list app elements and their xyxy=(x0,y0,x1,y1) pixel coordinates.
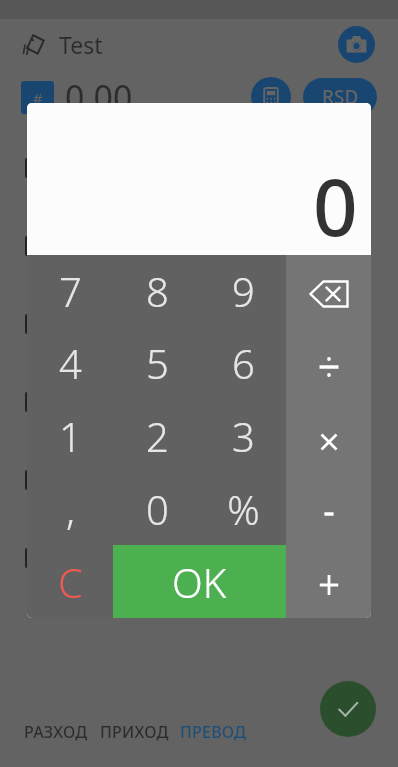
staticText: OK xyxy=(172,555,227,609)
button[interactable]: Divide xyxy=(286,327,371,399)
staticText: Test xyxy=(59,29,103,60)
staticText: RSD xyxy=(322,84,359,110)
staticText: , xyxy=(66,482,75,536)
staticText: 980,00 xyxy=(59,406,106,426)
staticText: ПРЕВОД xyxy=(180,721,247,742)
button[interactable]: Other xyxy=(0,519,398,597)
staticText: 0.00 xyxy=(65,74,133,120)
staticText: 3 xyxy=(232,409,255,463)
staticText: 350,00 xyxy=(59,250,106,270)
button[interactable]: 0 xyxy=(114,472,200,545)
button[interactable]: 8 xyxy=(114,255,200,327)
staticText: 5 xyxy=(146,336,169,390)
button[interactable]: Calculator xyxy=(251,77,291,117)
button[interactable]: , xyxy=(27,472,114,545)
button[interactable]: % xyxy=(200,472,286,545)
button[interactable]: Confirm xyxy=(320,681,376,737)
staticText: Bank xyxy=(59,300,100,323)
staticText: C xyxy=(58,555,83,609)
staticText: 6 xyxy=(232,336,255,390)
staticText: 2 xyxy=(146,409,169,463)
button[interactable]: Camera xyxy=(338,26,375,63)
staticText: 4 xyxy=(59,336,82,390)
staticText: Savings xyxy=(59,378,120,401)
button[interactable]: 7 xyxy=(27,255,114,327)
button[interactable]: RSD xyxy=(303,78,377,116)
button[interactable]: Wallet xyxy=(0,441,398,519)
button[interactable]: 6 xyxy=(200,327,286,399)
button[interactable]: Cash xyxy=(0,129,398,207)
button[interactable]: Bank xyxy=(0,285,398,363)
button[interactable]: 2 xyxy=(114,399,200,472)
button[interactable]: 5 xyxy=(114,327,200,399)
staticText: % xyxy=(227,482,260,536)
button[interactable]: ПРЕВОД xyxy=(176,712,251,751)
staticText: 1 xyxy=(59,409,82,463)
button[interactable]: 9 xyxy=(200,255,286,327)
button[interactable]: OK xyxy=(113,545,286,618)
button[interactable]: Savings xyxy=(0,363,398,441)
button[interactable]: 4 xyxy=(27,327,114,399)
button[interactable]: РАЗХОД xyxy=(20,712,92,751)
button[interactable]: 1 xyxy=(27,399,114,472)
staticText: ПРИХОД xyxy=(100,721,169,742)
staticText: # xyxy=(33,88,43,108)
button[interactable]: Card xyxy=(0,207,398,285)
button[interactable]: C xyxy=(27,545,113,618)
staticText: РАЗХОД xyxy=(24,721,88,742)
staticText: 12,00 xyxy=(59,562,98,582)
staticText: 9 xyxy=(232,264,255,318)
button[interactable]: Subtract xyxy=(286,472,371,545)
button[interactable]: Add xyxy=(286,545,371,618)
staticText: 0 xyxy=(313,153,358,259)
staticText: 8 xyxy=(146,264,169,318)
button[interactable]: Backspace xyxy=(286,255,371,327)
staticText: 0 xyxy=(146,482,169,536)
button[interactable]: Multiply xyxy=(286,399,371,472)
button[interactable]: 3 xyxy=(200,399,286,472)
button[interactable]: ПРИХОД xyxy=(96,712,173,751)
staticText: 7 xyxy=(59,264,82,318)
